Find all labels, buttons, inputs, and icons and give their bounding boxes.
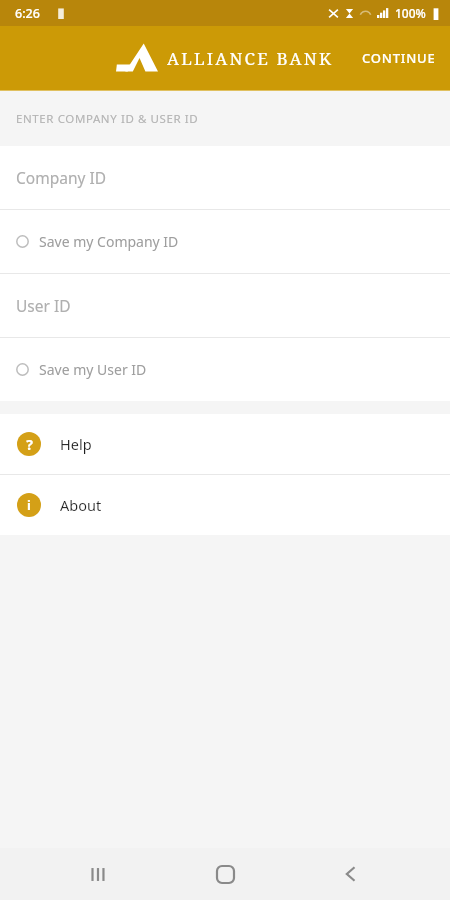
staticText: About: [60, 495, 102, 515]
staticText: ?: [26, 435, 33, 454]
staticText: i: [27, 496, 31, 514]
button[interactable]: ?: [0, 414, 450, 474]
staticText: Company ID: [16, 167, 106, 188]
button[interactable]: User ID: [0, 274, 450, 337]
button[interactable]: Recent apps: [72, 848, 126, 900]
staticText: ENTER COMPANY ID & USER ID: [16, 111, 199, 127]
staticText: ALLIANCE BANK: [167, 47, 334, 70]
button[interactable]: Home: [198, 848, 252, 900]
staticText: Help: [60, 434, 92, 454]
button[interactable]: Save my Company ID: [0, 210, 450, 273]
staticText: Save my User ID: [39, 360, 147, 379]
button[interactable]: Save my User ID: [0, 338, 450, 401]
staticText: 6:26: [15, 5, 40, 22]
staticText: CONTINUE: [362, 49, 436, 67]
button[interactable]: i: [0, 475, 450, 535]
staticText: Save my Company ID: [39, 232, 179, 251]
button[interactable]: Company ID: [0, 146, 450, 209]
button[interactable]: CONTINUE: [348, 35, 450, 81]
button[interactable]: Back: [324, 848, 378, 900]
staticText: 100%: [395, 5, 426, 21]
staticText: User ID: [16, 295, 71, 316]
